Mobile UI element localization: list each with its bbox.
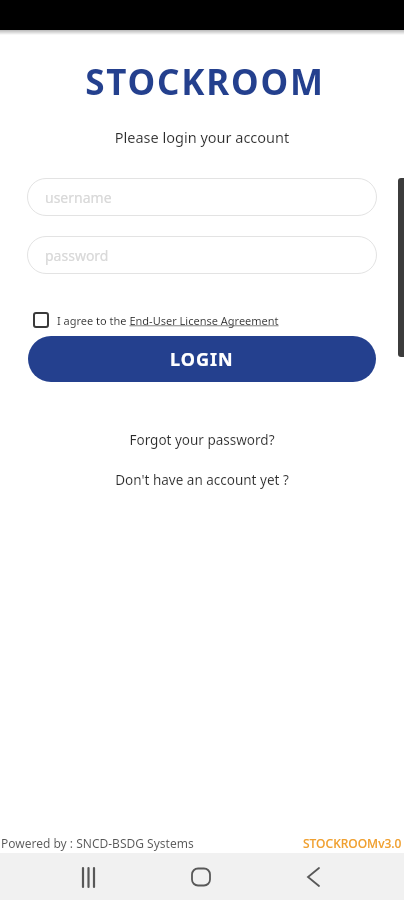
button[interactable]: password <box>27 236 377 274</box>
staticText: I agree to the End-User License Agreemen… <box>57 313 279 328</box>
button[interactable]: I agree to the End-User License Agreemen… <box>33 312 279 328</box>
staticText: STOCKROOM <box>3 58 404 106</box>
button[interactable]: username <box>27 178 377 216</box>
staticText: password <box>45 246 109 265</box>
button[interactable]: LOGIN <box>28 336 376 382</box>
button[interactable]: Forgot your password? <box>0 431 404 449</box>
staticText: LOGIN <box>170 347 234 372</box>
staticText: Powered by : SNCD-BSDG Systems <box>1 835 194 851</box>
staticText: username <box>45 188 112 207</box>
button[interactable]: Don't have an account yet ? <box>0 471 404 489</box>
staticText: STOCKROOMv3.0 <box>303 835 402 851</box>
staticText: Please login your account <box>0 127 404 147</box>
